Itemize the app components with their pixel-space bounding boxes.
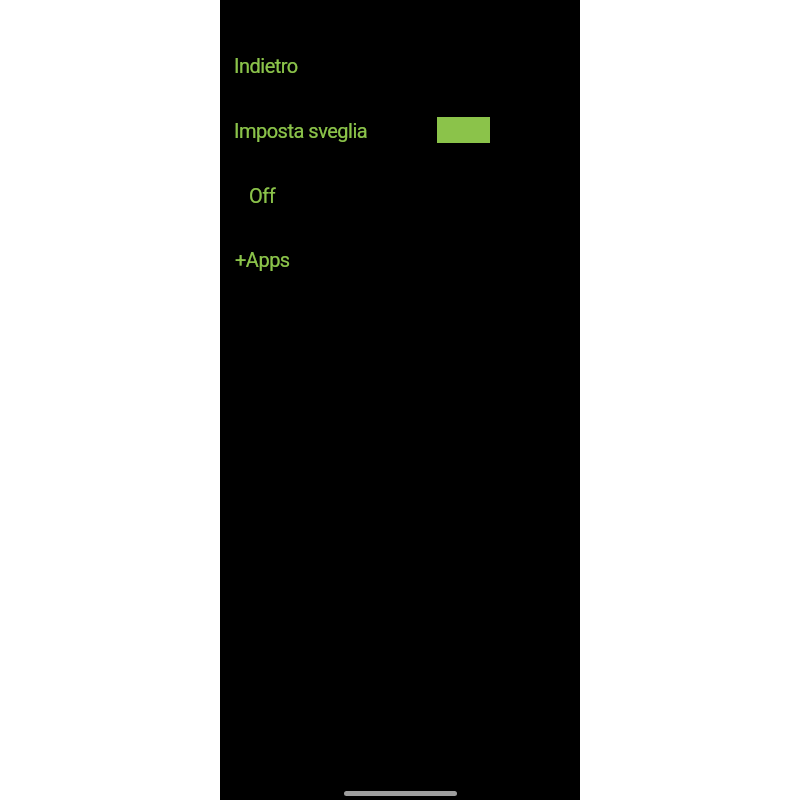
staticText: Off (249, 184, 276, 207)
button[interactable]: Off (243, 176, 282, 215)
staticText: +Apps (235, 248, 290, 271)
button[interactable]: +Apps (229, 240, 296, 279)
staticText: Imposta sveglia (234, 119, 368, 142)
button[interactable]: Indietro (228, 46, 304, 85)
button[interactable]: Imposta sveglia (228, 111, 374, 150)
staticText: Indietro (234, 54, 298, 77)
